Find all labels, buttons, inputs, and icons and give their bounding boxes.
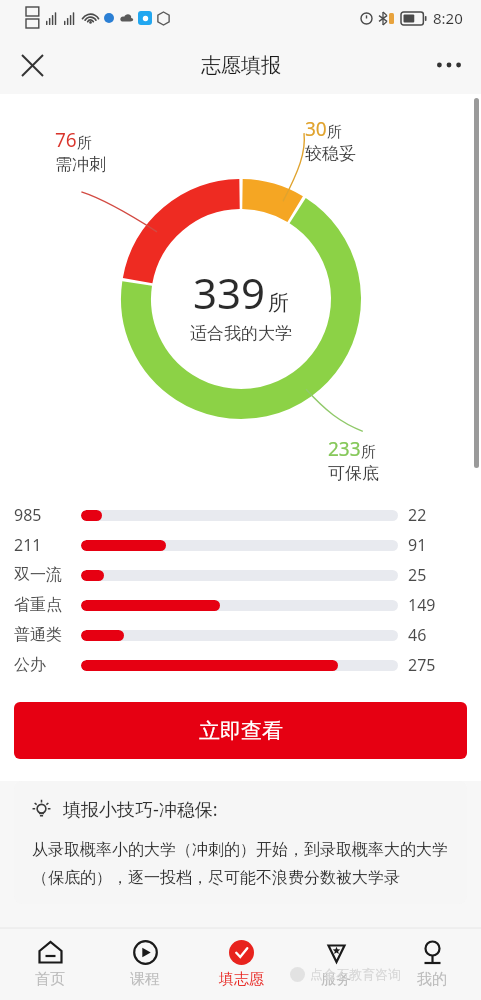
staticText: 服务: [321, 970, 351, 989]
staticText: 填志愿: [219, 970, 264, 989]
staticText: 志愿填报: [201, 53, 281, 78]
staticText: 我的: [417, 970, 447, 989]
staticText: 较稳妥: [305, 143, 356, 164]
staticText: 立即查看: [199, 718, 283, 744]
button[interactable]: 211: [0, 530, 481, 560]
staticText: 8:20: [433, 8, 463, 28]
staticText: 76: [55, 127, 77, 153]
button[interactable]: 双一流: [0, 560, 481, 590]
staticText: 公办: [14, 655, 46, 675]
staticText: 91: [408, 534, 427, 556]
staticText: 46: [408, 624, 427, 646]
staticText: 149: [408, 594, 436, 616]
button[interactable]: 首页: [4, 928, 96, 1000]
staticText: 211: [14, 534, 42, 556]
staticText: 课程: [130, 970, 160, 989]
staticText: 省重点: [14, 595, 62, 615]
button[interactable]: 填志愿: [195, 928, 287, 1000]
staticText: 275: [408, 654, 436, 676]
button[interactable]: 985: [0, 500, 481, 530]
staticText: 所: [77, 134, 92, 153]
button[interactable]: 课程: [99, 928, 191, 1000]
staticText: 30: [305, 116, 327, 142]
staticText: 所: [327, 123, 342, 142]
button[interactable]: Close: [8, 41, 56, 89]
button[interactable]: More options: [425, 41, 473, 89]
staticText: 339: [193, 264, 266, 321]
button[interactable]: 普通类: [0, 620, 481, 650]
staticText: 22: [408, 504, 427, 526]
staticText: 首页: [35, 970, 65, 989]
staticText: 可保底: [328, 463, 379, 484]
staticText: 需冲刺: [55, 154, 106, 175]
button[interactable]: 我的: [386, 928, 478, 1000]
button[interactable]: 公办: [0, 650, 481, 680]
staticText: 双一流: [14, 565, 62, 585]
staticText: 普通类: [14, 625, 62, 645]
staticText: 233: [328, 436, 361, 462]
staticText: 所: [361, 443, 376, 462]
staticText: 适合我的大学: [190, 323, 292, 344]
staticText: 点金石教育咨询: [310, 966, 401, 982]
button[interactable]: 服务: [290, 928, 382, 1000]
button[interactable]: 省重点: [0, 590, 481, 620]
staticText: 25: [408, 564, 427, 586]
staticText: 填报小技巧-冲稳保:: [63, 797, 218, 822]
staticText: 从录取概率小的大学（冲刺的）开始，到录取概率大的大学（保底的），逐一投档，尽可能…: [32, 840, 449, 888]
button[interactable]: 立即查看: [14, 702, 467, 759]
staticText: 985: [14, 504, 42, 526]
staticText: 所: [268, 290, 289, 316]
